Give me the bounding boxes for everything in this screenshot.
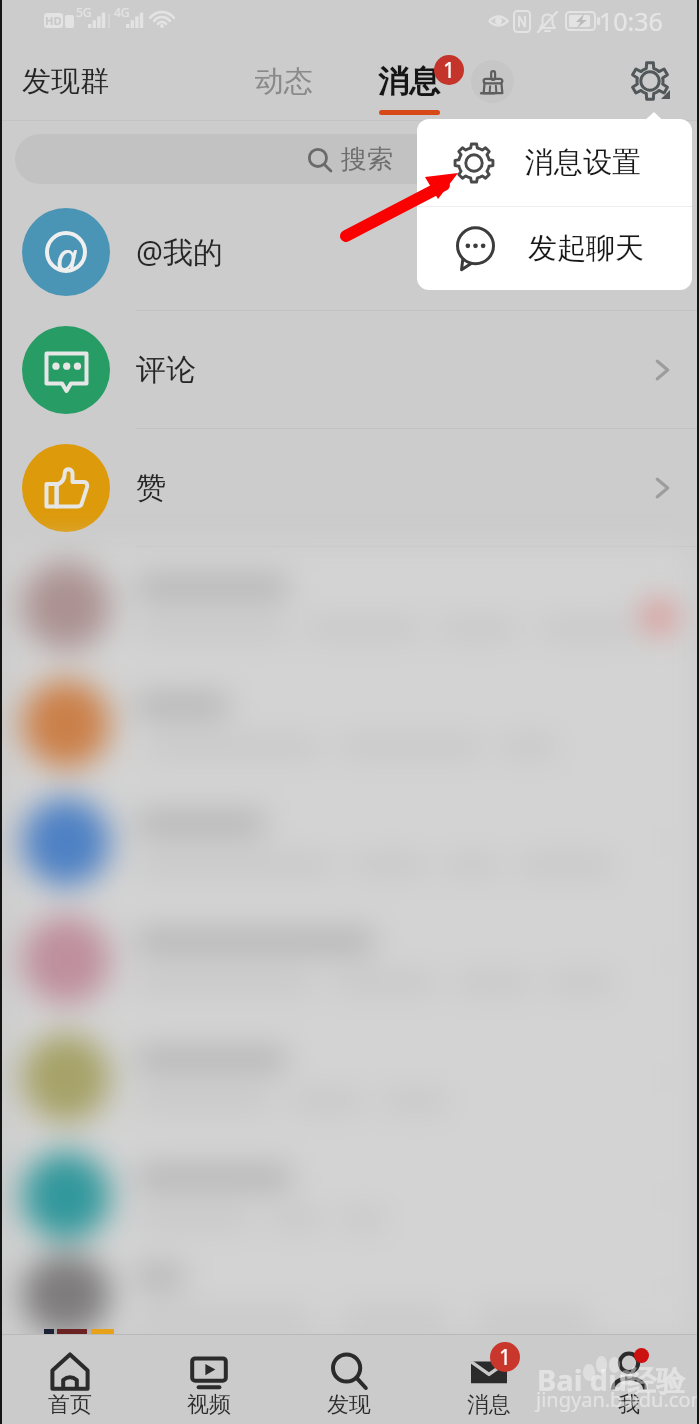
staticText: 发现 [327,1391,371,1419]
button[interactable]: 首页 [0,1335,139,1424]
staticText: 消息 [467,1391,511,1419]
button[interactable]: 评论 [0,311,699,429]
staticText: jingyan.baidu.com [536,1386,699,1413]
staticText: 我 [618,1391,640,1419]
button[interactable]: Settings [614,45,686,117]
button[interactable]: 发现 [279,1335,419,1424]
staticText: a [56,230,78,272]
staticText: 赞 [136,469,166,507]
staticText: 发起聊天 [528,230,644,267]
staticText: 搜索 [341,143,393,176]
staticText: 4G [114,4,130,20]
staticText: 消息设置 [525,144,641,181]
staticText: 评论 [136,351,196,389]
button[interactable]: Clear messages [471,60,514,103]
staticText: 动态 [255,63,313,100]
staticText: @我的 [136,231,223,272]
button[interactable]: 动态 [239,51,329,112]
button[interactable]: 搜索 [15,134,684,184]
button[interactable]: 赞 [0,429,699,547]
staticText: HD [45,13,62,28]
button[interactable]: 1 [419,1335,559,1424]
button[interactable]: a [0,193,699,311]
button[interactable]: 发现群 [6,51,125,112]
staticText: 5G [76,4,92,20]
staticText: Bai du经验 [537,1360,686,1400]
button[interactable]: 发起聊天 [417,207,692,290]
staticText: 首页 [48,1391,92,1419]
staticText: 1 [499,1343,512,1372]
staticText: 10:36 [599,4,663,38]
staticText: 1 [443,56,456,85]
staticText: 视频 [187,1391,231,1419]
staticText: 消息 [378,62,440,101]
staticText: 发现群 [22,63,109,100]
button[interactable]: 我 [559,1335,699,1424]
button[interactable]: 视频 [139,1335,279,1424]
button[interactable]: 消息设置 [417,119,692,206]
button[interactable]: 消息 [369,43,449,115]
